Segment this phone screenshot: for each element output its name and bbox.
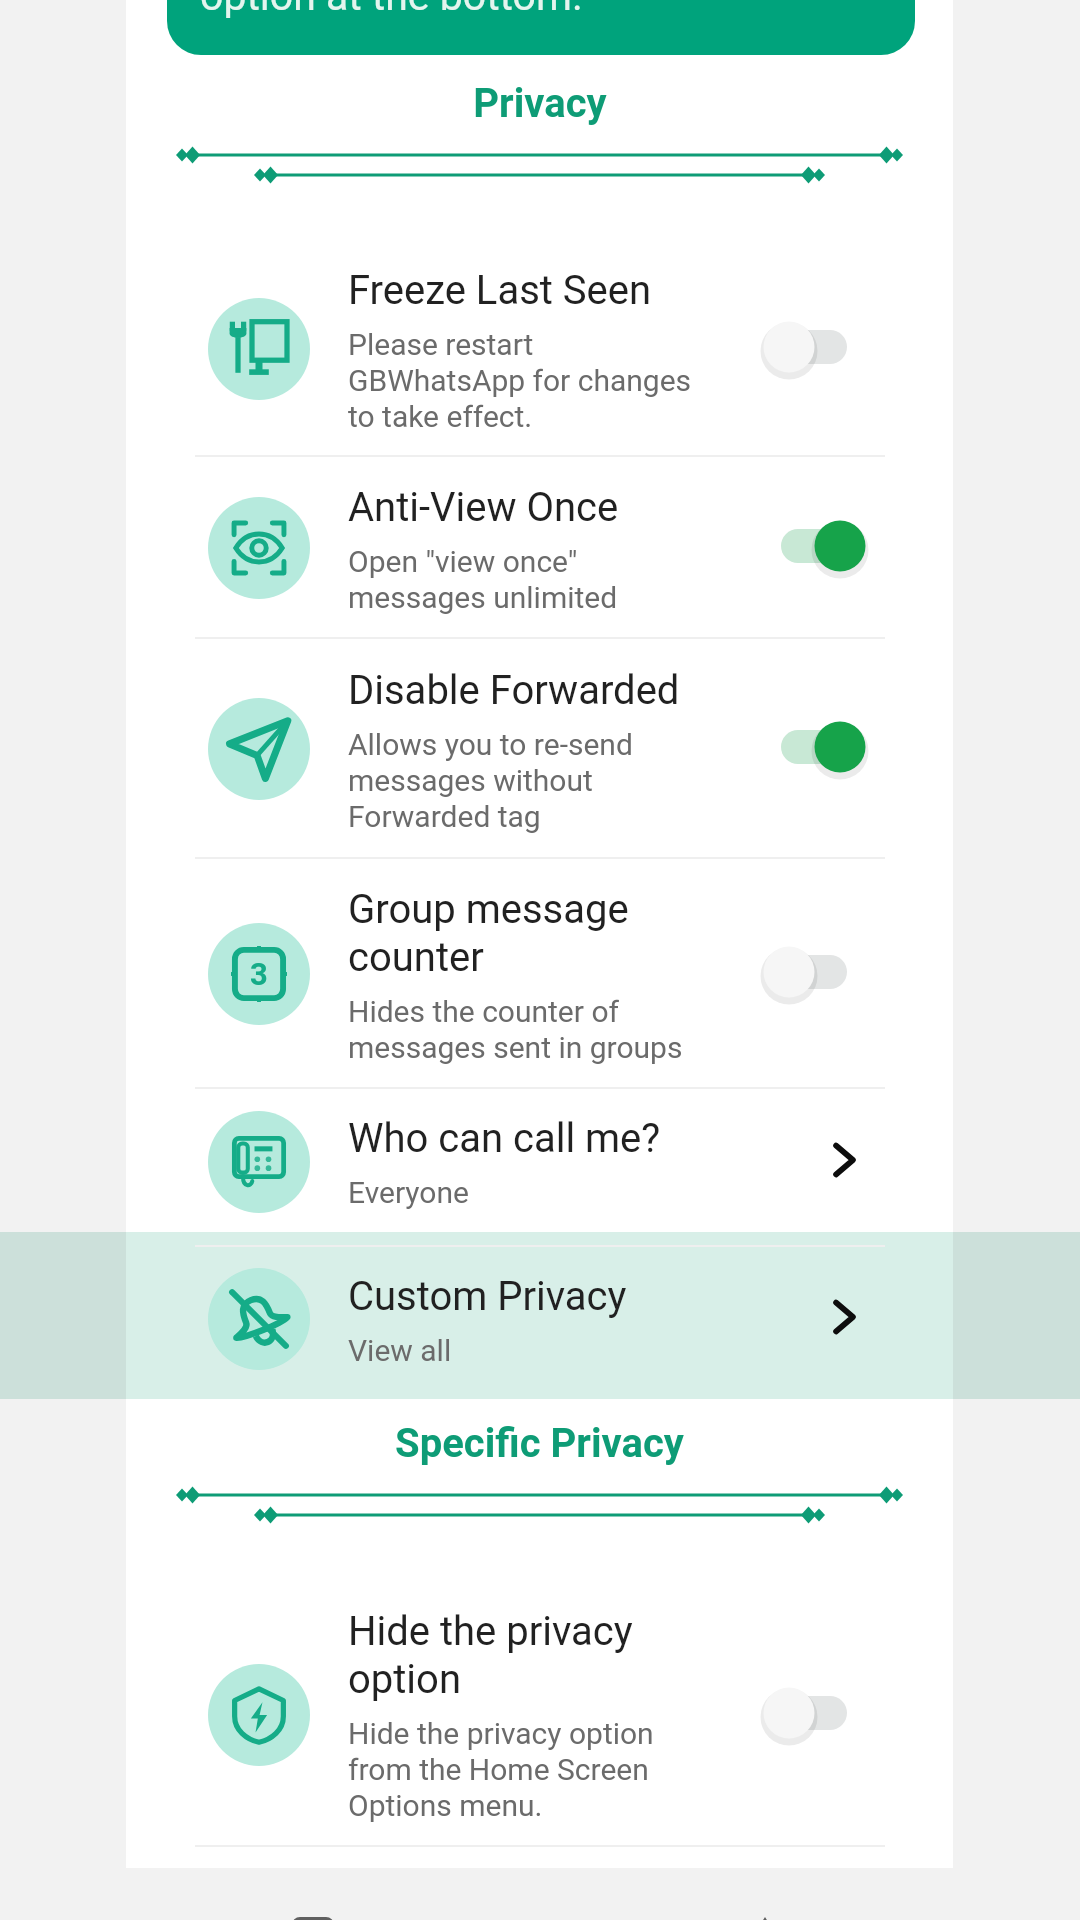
staticText: Open "view once" messages unlimited [348,544,618,615]
staticText: Allows you to re-send messages without F… [348,727,633,834]
button[interactable]: Calls [705,1865,825,1920]
button[interactable]: Hide the privacy option [126,1580,953,1845]
staticText: Specific Privacy [395,1420,684,1467]
staticText: Disable Forwarded [348,667,680,714]
button[interactable]: Disable Forwarded [126,637,953,857]
staticText: Hide the privacy option from the Home Sc… [348,1716,654,1823]
button[interactable]: Freeze Last Seen [126,239,953,455]
button[interactable]: Open [762,1124,880,1196]
staticText: Who can call me? [348,1115,661,1162]
button[interactable]: Switch on [762,510,880,582]
staticText: Hides the counter of messages sent in gr… [348,994,683,1065]
staticText: Everyone [348,1175,469,1210]
staticText: Custom Privacy [348,1273,627,1320]
button[interactable]: Switch on [762,711,880,783]
button[interactable]: Switch off [762,936,880,1008]
button[interactable]: Switch off [762,1677,880,1749]
button[interactable]: Switch off [762,311,880,383]
button[interactable]: Chats [253,1865,373,1920]
staticText: Freeze Last Seen [348,267,652,314]
button[interactable]: Custom Privacy [126,1232,953,1402]
staticText: 3 [250,956,268,992]
staticText: View all [348,1333,452,1368]
staticText: option at the bottom. [200,0,583,20]
button[interactable]: Group message counter [126,857,953,1087]
button[interactable]: Open [762,1281,880,1353]
staticText: Please restart GBWhatsApp for changes to… [348,327,692,434]
staticText: Hide the privacy option [348,1608,633,1703]
staticText: Privacy [473,80,607,127]
button[interactable]: Anti-View Once [126,455,953,637]
button[interactable]: Who can call me [126,1087,953,1232]
staticText: Anti-View Once [348,484,619,531]
staticText: Group message counter [348,886,629,981]
